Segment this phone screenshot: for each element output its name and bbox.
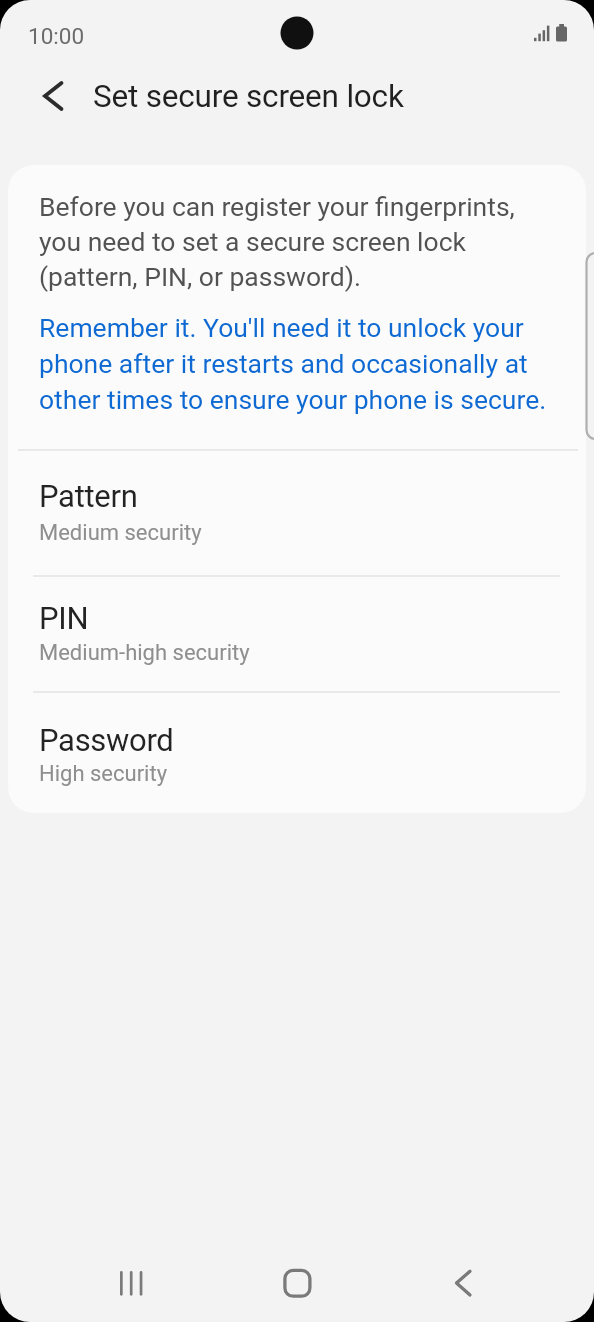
staticText: Medium-high security <box>39 640 250 666</box>
button[interactable] <box>267 1253 327 1313</box>
staticText: Set secure screen lock <box>93 78 404 115</box>
staticText: Medium security <box>39 520 202 546</box>
staticText: High security <box>39 761 168 787</box>
button[interactable] <box>24 68 82 124</box>
staticText: Password <box>39 722 174 758</box>
button[interactable]: Password <box>8 692 586 813</box>
staticText: 10:00 <box>28 23 85 49</box>
staticText: Before you can register your fingerprint… <box>39 191 515 293</box>
button[interactable]: PIN <box>8 576 586 690</box>
staticText: PIN <box>39 600 89 636</box>
button[interactable]: Pattern <box>8 450 586 574</box>
button[interactable] <box>101 1253 161 1313</box>
staticText: Pattern <box>39 478 138 514</box>
button[interactable] <box>432 1253 492 1313</box>
staticText: Remember it. You'll need it to unlock yo… <box>39 312 547 415</box>
